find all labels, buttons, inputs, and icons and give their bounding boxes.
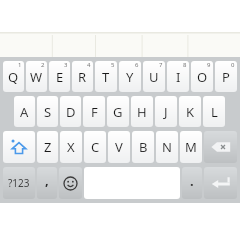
button[interactable]: Z (37, 131, 58, 163)
staticText: E (56, 68, 64, 86)
staticText: P (222, 68, 230, 86)
staticText: 2 (41, 61, 45, 69)
button[interactable]: H (131, 96, 153, 127)
staticText: 1 (18, 61, 22, 69)
button[interactable]: S (37, 96, 58, 127)
staticText: Q (8, 68, 19, 86)
staticText: 3 (64, 61, 68, 69)
button[interactable]: Period (182, 167, 202, 199)
button[interactable]: Shift (3, 131, 35, 163)
button[interactable]: Comma (37, 167, 57, 199)
button[interactable]: U (143, 61, 165, 92)
staticText: J (164, 103, 168, 121)
staticText: C (91, 138, 100, 156)
button[interactable]: W (26, 61, 47, 92)
button[interactable]: B (132, 131, 154, 163)
staticText: , (45, 171, 49, 189)
staticText: M (185, 138, 197, 156)
staticText: N (162, 138, 172, 156)
button[interactable]: E (49, 61, 70, 92)
staticText: 5 (111, 61, 115, 69)
button[interactable]: Symbols (3, 167, 35, 199)
staticText: R (78, 68, 87, 86)
staticText: K (186, 103, 195, 121)
button[interactable]: L (203, 96, 225, 127)
staticText: T (102, 68, 110, 86)
button[interactable]: J (155, 96, 177, 127)
button[interactable]: O (191, 61, 213, 92)
button[interactable]: M (180, 131, 202, 163)
staticText: 8 (183, 61, 187, 69)
staticText: F (91, 103, 98, 121)
button[interactable]: D (60, 96, 81, 127)
button[interactable]: R (72, 61, 93, 92)
button[interactable]: Enter (204, 167, 237, 199)
staticText: A (20, 103, 29, 121)
staticText: 7 (159, 61, 163, 69)
staticText: H (137, 103, 147, 121)
button[interactable]: Emoji (59, 167, 82, 199)
staticText: 6 (135, 61, 139, 69)
button[interactable]: T (95, 61, 117, 92)
staticText: . (190, 172, 194, 190)
staticText: D (66, 103, 76, 121)
button[interactable]: C (84, 131, 106, 163)
staticText: G (113, 103, 123, 121)
staticText: 4 (87, 61, 91, 69)
staticText: B (139, 138, 148, 156)
staticText: Z (44, 138, 52, 156)
button[interactable]: N (156, 131, 178, 163)
staticText: 0 (231, 61, 235, 69)
staticText: O (197, 68, 208, 86)
button[interactable]: P (215, 61, 237, 92)
button[interactable]: Y (119, 61, 141, 92)
staticText: ?123 (8, 176, 30, 190)
button[interactable]: K (179, 96, 201, 127)
staticText: V (115, 138, 123, 156)
button[interactable]: A (14, 96, 35, 127)
staticText: I (176, 68, 181, 86)
staticText: 9 (207, 61, 211, 69)
staticText: X (67, 138, 75, 156)
staticText: U (149, 68, 159, 86)
button[interactable]: G (107, 96, 129, 127)
button[interactable]: V (108, 131, 130, 163)
staticText: W (30, 68, 43, 86)
button[interactable]: I (167, 61, 189, 92)
button[interactable]: Backspace (204, 131, 237, 163)
staticText: Y (126, 68, 134, 86)
staticText: S (44, 103, 52, 121)
button[interactable]: F (83, 96, 105, 127)
staticText: L (211, 103, 218, 121)
button[interactable]: Q (3, 61, 24, 92)
button[interactable]: X (60, 131, 82, 163)
